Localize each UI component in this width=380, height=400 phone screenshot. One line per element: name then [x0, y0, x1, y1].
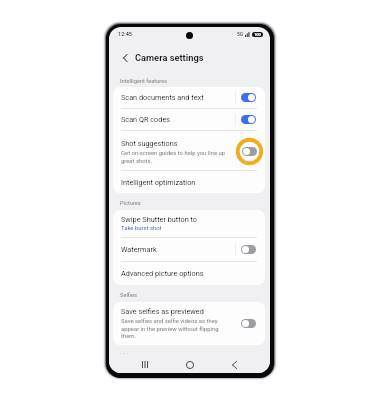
button[interactable]: Scan documents and text	[113, 87, 265, 108]
button[interactable]: Home	[182, 359, 197, 370]
staticText: Swipe Shutter button to	[121, 215, 197, 224]
staticText: Video	[120, 352, 135, 359]
button[interactable]: Scan QR codes	[113, 109, 265, 130]
staticText: Take burst shot	[121, 225, 162, 232]
staticText: Intelligent optimization	[121, 178, 257, 187]
staticText: Selfies	[120, 292, 137, 299]
staticText: Get on-screen guides to help you line up…	[121, 150, 226, 164]
staticText: Watermark	[121, 245, 235, 254]
staticText: Camera settings	[135, 52, 204, 63]
staticText: Intelligent features	[120, 78, 168, 85]
button[interactable]: Back	[227, 359, 242, 370]
staticText: 100	[254, 32, 261, 37]
button[interactable]: Swipe Shutter button to	[113, 210, 265, 237]
button[interactable]: Advanced picture options	[113, 262, 265, 285]
button[interactable]: Navigate up	[117, 50, 132, 65]
button[interactable]: Switch off	[242, 147, 257, 156]
button[interactable]: Save selfies as previewed	[113, 302, 265, 345]
staticText: Scan QR codes	[121, 115, 235, 124]
button[interactable]: Switch off	[241, 319, 256, 328]
staticText: Save selfies and selfie videos as they a…	[121, 318, 219, 339]
staticText: 5G	[237, 31, 244, 37]
staticText: Advanced picture options	[121, 269, 257, 278]
button[interactable]: Switch on	[241, 93, 256, 102]
button[interactable]: Watermark	[113, 238, 265, 261]
button[interactable]: Intelligent optimization	[113, 171, 265, 193]
staticText: Pictures	[120, 200, 141, 207]
staticText: Shot suggestions	[121, 139, 178, 148]
button[interactable]: Switch off	[241, 245, 256, 254]
staticText: Save selfies as previewed	[121, 307, 204, 316]
button[interactable]: Recent apps	[137, 359, 153, 370]
staticText: 12:45	[118, 31, 132, 37]
button[interactable]: Switch on	[241, 115, 256, 124]
staticText: Scan documents and text	[121, 93, 235, 102]
button[interactable]: Shot suggestions	[113, 131, 265, 170]
